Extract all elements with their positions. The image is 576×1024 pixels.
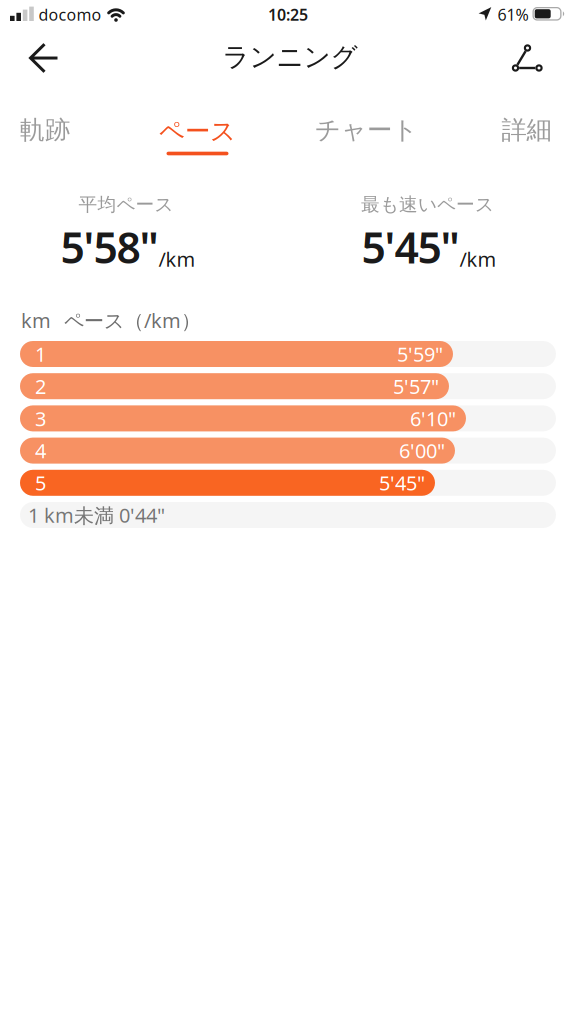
staticText: ランニング bbox=[222, 41, 357, 73]
staticText: 61% bbox=[497, 4, 528, 25]
staticText: 1 bbox=[35, 341, 46, 367]
staticText: 5'45" bbox=[361, 219, 459, 275]
staticText: 4 bbox=[35, 437, 46, 464]
button[interactable]: 詳細 bbox=[481, 108, 571, 152]
staticText: 5'58" bbox=[60, 219, 158, 275]
staticText: 2 bbox=[35, 373, 46, 399]
staticText: docomo bbox=[38, 4, 101, 25]
staticText: ペース（/km） bbox=[64, 307, 201, 334]
button[interactable]: チャート bbox=[306, 108, 426, 152]
staticText: /km bbox=[158, 246, 195, 272]
staticText: チャート bbox=[315, 114, 418, 145]
button[interactable]: Share route bbox=[505, 36, 549, 80]
staticText: 5 bbox=[35, 469, 46, 496]
staticText: 6'10" bbox=[410, 405, 456, 432]
button[interactable]: ペース bbox=[159, 111, 236, 155]
staticText: 詳細 bbox=[501, 114, 551, 145]
staticText: ペース bbox=[159, 116, 236, 147]
staticText: 5'45" bbox=[379, 469, 425, 496]
staticText: 平均ペース bbox=[78, 193, 173, 216]
staticText: /km bbox=[459, 246, 496, 272]
button[interactable]: Back bbox=[22, 36, 66, 80]
staticText: 軌跡 bbox=[20, 114, 70, 145]
staticText: 10:25 bbox=[268, 4, 308, 25]
staticText: 3 bbox=[35, 405, 46, 432]
staticText: 5'57" bbox=[393, 373, 439, 399]
staticText: km bbox=[21, 307, 51, 334]
staticText: 6'00" bbox=[399, 437, 445, 464]
staticText: 1 km未満 0'44" bbox=[28, 502, 165, 528]
staticText: 最も速いペース bbox=[361, 193, 494, 216]
button[interactable]: 軌跡 bbox=[0, 108, 90, 152]
staticText: 5'59" bbox=[397, 341, 443, 367]
